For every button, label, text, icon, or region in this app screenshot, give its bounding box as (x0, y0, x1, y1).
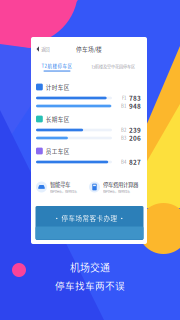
staticText: B1 (121, 103, 126, 109)
button[interactable]: 返回 (36, 43, 54, 55)
staticText: T3航楼及空中花园停车区 (91, 64, 135, 70)
button[interactable]: · 停车场常客卡办理 · (35, 206, 143, 240)
staticText: 948 (129, 101, 141, 111)
staticText: B3 (121, 135, 126, 141)
staticText: 智能寻车 (50, 180, 70, 188)
staticText: 返回 (41, 46, 49, 52)
staticText: 随时停车，随地找车 (50, 189, 77, 194)
staticText: 239 (129, 125, 141, 135)
staticText: 停车场/楼 (76, 45, 102, 53)
staticText: 783 (129, 93, 141, 103)
staticText: T2航楼停车区 (41, 62, 72, 69)
staticText: B4 (121, 159, 126, 165)
staticText: 长期车区 (46, 115, 70, 123)
staticText: 停车费用计算器 (103, 180, 138, 188)
staticText: 827 (129, 157, 141, 167)
button[interactable]: T3航楼及空中花园停车区 (85, 61, 141, 73)
staticText: F1 (122, 95, 126, 101)
staticText: B2 (121, 127, 126, 133)
button[interactable]: 停车费用计算器 (89, 180, 142, 194)
staticText: 随时停车，随地找车 (103, 189, 130, 194)
button[interactable]: 智能寻车 (36, 180, 89, 194)
staticText: 206 (129, 133, 141, 143)
button[interactable]: T2航楼停车区 (36, 61, 78, 73)
staticText: 机场交通 (70, 260, 110, 274)
staticText: 停车找车两不误 (55, 278, 125, 292)
staticText: 计时车区 (46, 83, 70, 91)
staticText: · 停车场常客卡办理 · (53, 213, 125, 223)
staticText: 员工车区 (46, 147, 70, 155)
